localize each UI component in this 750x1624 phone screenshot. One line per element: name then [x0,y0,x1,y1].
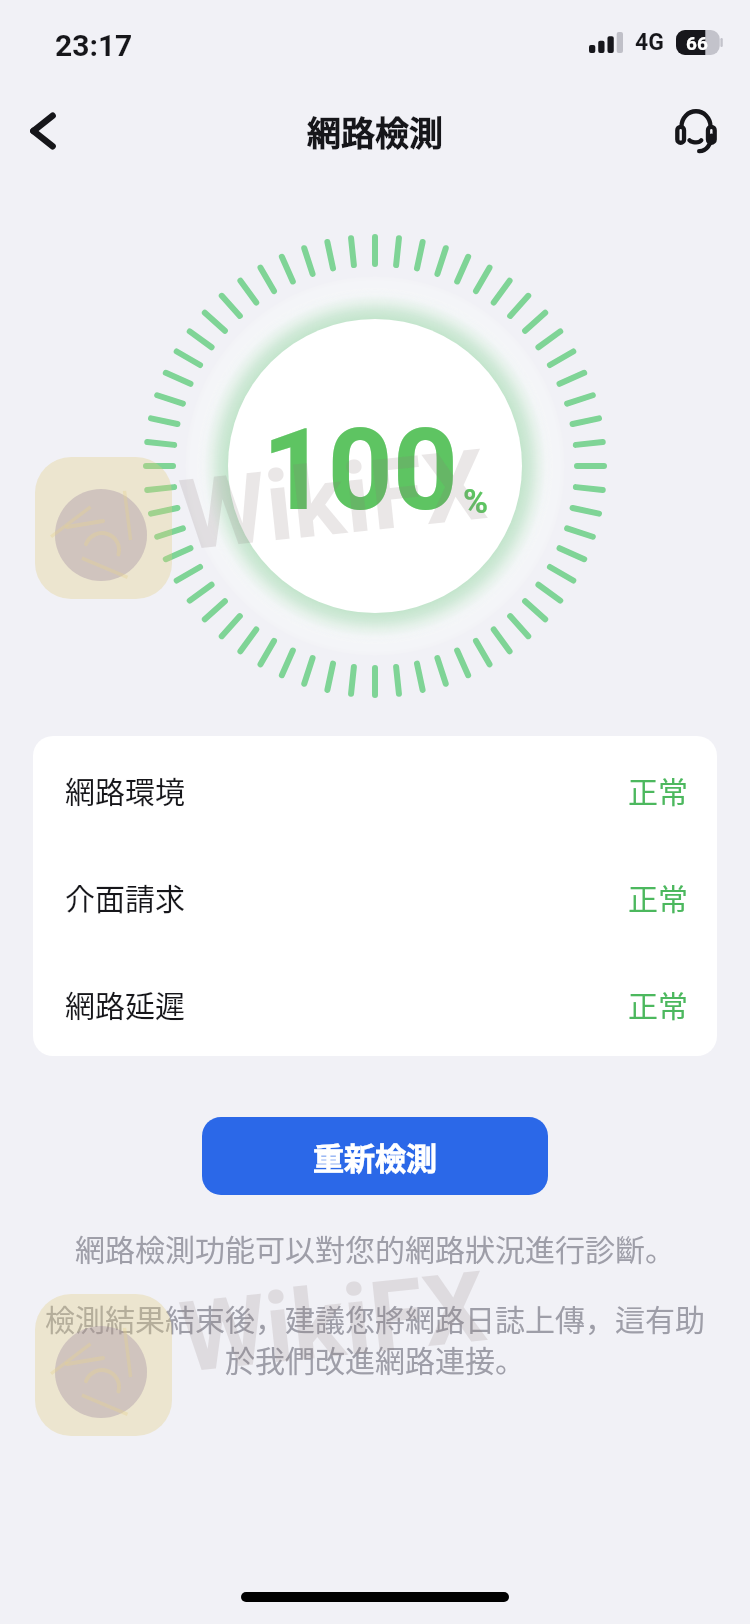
staticText: WikiFX [175,427,492,574]
staticText: 正常 [628,982,688,1025]
staticText: WikiFX [175,1249,492,1396]
staticText: 4G [635,29,664,56]
button[interactable]: 介面請求 [33,843,717,950]
button[interactable]: 網路延遲 [33,950,717,1056]
staticText: 網路檢測功能可以對您的網路狀況進行診斷。 [75,1226,675,1269]
staticText: 正常 [628,768,688,811]
staticText: 正常 [628,875,688,918]
button[interactable]: Customer service [656,91,736,171]
staticText: 網路延遲 [65,982,185,1025]
button[interactable]: Back [0,88,86,174]
staticText: 網路檢測 [307,107,443,156]
button[interactable]: 重新檢測 [202,1117,548,1195]
staticText: 網路環境 [65,768,185,811]
staticText: 重新檢測 [313,1134,437,1179]
staticText: 介面請求 [65,875,185,918]
staticText: 66 [686,32,708,54]
button[interactable]: 網路環境 [33,736,717,843]
staticText: 23:17 [55,28,133,63]
staticText: 檢測結果結束後，建議您將網路日誌上傳，這有助於我們改進網路連接。 [33,1296,717,1380]
staticText: % [463,481,489,521]
staticText: 100 [262,403,459,537]
